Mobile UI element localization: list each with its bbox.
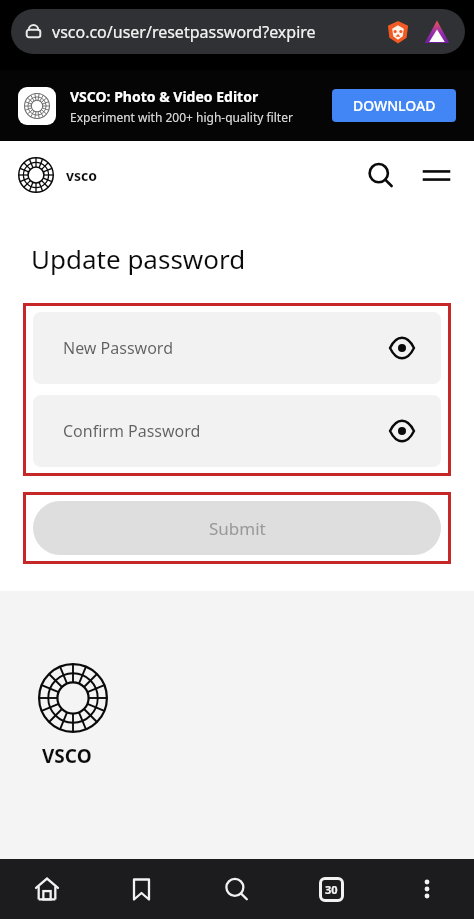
button[interactable]: vsco.co/user/resetpassword?expire: [11, 9, 465, 54]
button[interactable]: Search: [360, 155, 400, 195]
button[interactable]: Confirm Password: [33, 395, 441, 467]
button[interactable]: Submit: [33, 501, 441, 555]
button[interactable]: Tabs, 30 open: [284, 859, 379, 919]
button[interactable]: New Password: [33, 312, 441, 384]
staticText: DOWNLOAD: [353, 96, 436, 115]
staticText: 30: [325, 882, 338, 897]
button[interactable]: More options: [379, 859, 474, 919]
button[interactable]: Bookmarks: [94, 859, 189, 919]
button[interactable]: Home: [0, 859, 94, 919]
staticText: Update password: [31, 241, 246, 276]
button[interactable]: Brave Shields: [385, 19, 411, 45]
staticText: Submit: [209, 517, 266, 540]
staticText: vsco.co/user/resetpassword?expire: [52, 21, 379, 43]
button[interactable]: Show password: [385, 331, 419, 365]
button[interactable]: vsco: [18, 153, 97, 197]
staticText: New Password: [63, 337, 385, 359]
button[interactable]: Search: [189, 859, 284, 919]
staticText: Confirm Password: [63, 420, 385, 442]
staticText: VSCO: [42, 743, 92, 769]
staticText: VSCO: Photo & Video Editor: [70, 87, 259, 106]
button[interactable]: Brave Rewards: [423, 18, 451, 46]
button[interactable]: DOWNLOAD: [332, 89, 456, 122]
staticText: vsco: [66, 166, 97, 185]
staticText: Experiment with 200+ high-quality filter: [70, 109, 293, 125]
button[interactable]: Menu: [416, 155, 456, 195]
button[interactable]: Show password: [385, 414, 419, 448]
